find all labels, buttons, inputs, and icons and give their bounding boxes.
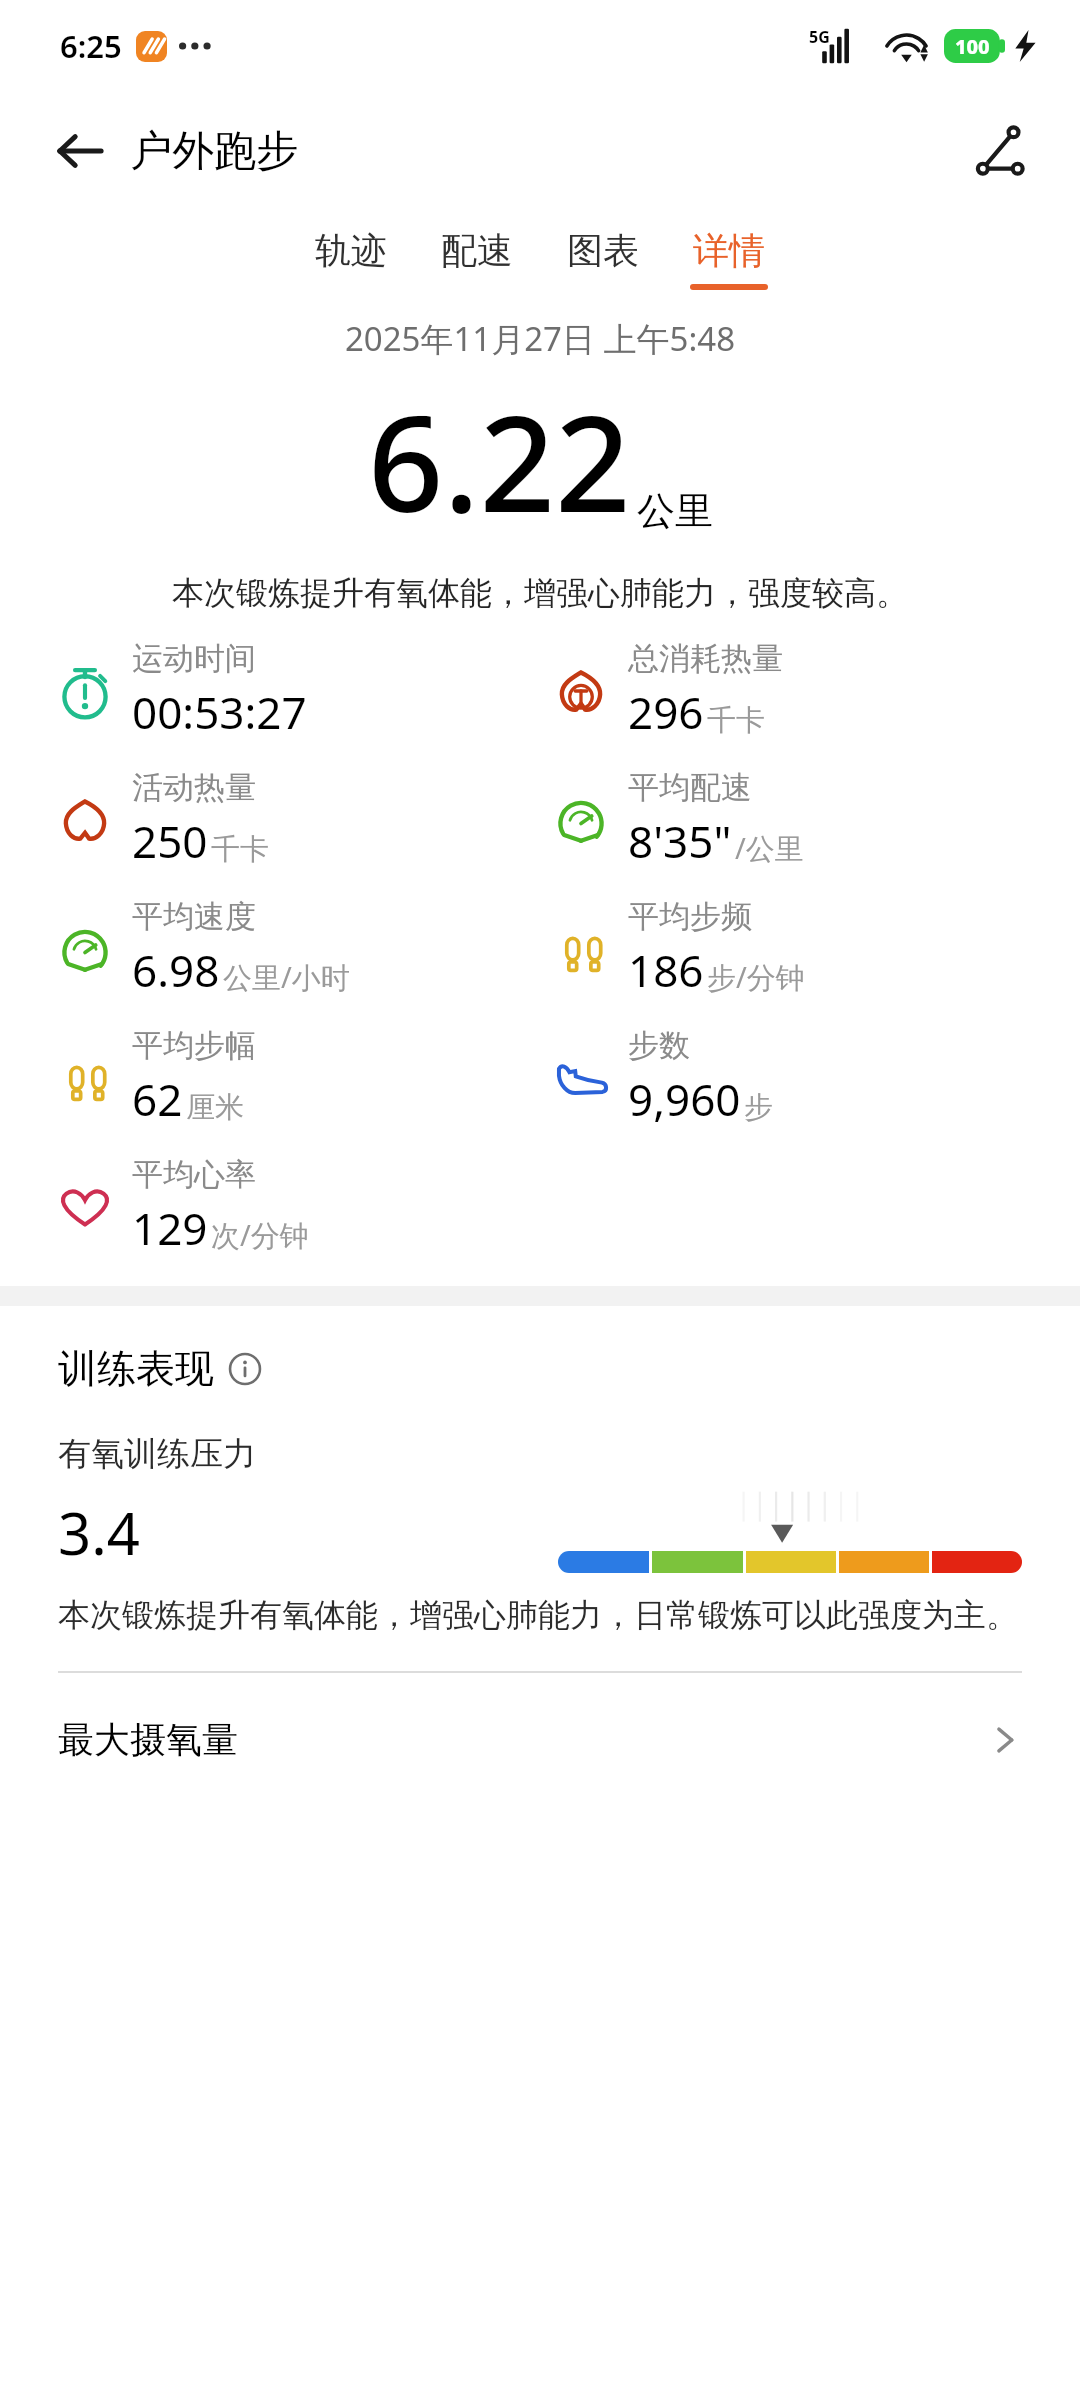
- button[interactable]: 总消耗热量: [548, 639, 1080, 742]
- button[interactable]: 配速: [438, 228, 516, 290]
- staticText: 本次锻炼提升有氧体能，增强心肺能力，日常锻炼可以此强度为主。: [58, 1595, 1018, 1635]
- staticText: /公里: [735, 828, 804, 868]
- staticText: 详情: [693, 228, 765, 273]
- button[interactable]: 平均步幅: [52, 1026, 540, 1129]
- staticText: 6.98: [132, 940, 220, 1000]
- staticText: 有氧训练压力: [58, 1433, 256, 1475]
- button[interactable]: 训练表现: [58, 1344, 262, 1393]
- staticText: 平均步频: [628, 897, 752, 936]
- other: More: [988, 1723, 1022, 1757]
- staticText: 次/分钟: [211, 1215, 309, 1255]
- staticText: 186: [628, 940, 704, 1000]
- staticText: 5G: [809, 26, 830, 48]
- button[interactable]: 轨迹: [312, 228, 390, 290]
- staticText: 平均步幅: [132, 1026, 256, 1065]
- staticText: 8'35": [628, 811, 732, 871]
- button[interactable]: 最大摄氧量: [58, 1717, 1022, 1762]
- staticText: 6:25: [60, 25, 122, 67]
- staticText: 公里/小时: [223, 957, 350, 997]
- staticText: 129: [132, 1198, 208, 1258]
- staticText: 平均心率: [132, 1155, 256, 1194]
- staticText: 最大摄氧量: [58, 1717, 238, 1762]
- staticText: 2025年11月27日 上午5:48: [0, 316, 1080, 361]
- button[interactable]: 平均心率: [52, 1155, 540, 1258]
- staticText: 活动热量: [132, 768, 256, 807]
- button[interactable]: 活动热量: [52, 768, 540, 871]
- staticText: 平均配速: [628, 768, 752, 807]
- staticText: 250: [132, 811, 208, 871]
- staticText: 轨迹: [315, 228, 387, 273]
- staticText: 00:53:27: [132, 682, 307, 742]
- staticText: 9,960: [628, 1069, 741, 1129]
- staticText: 运动时间: [132, 639, 256, 678]
- staticText: 步/分钟: [707, 957, 805, 997]
- staticText: 图表: [567, 228, 639, 273]
- staticText: 千卡: [707, 702, 765, 739]
- staticText: 公里: [637, 487, 713, 535]
- staticText: 62: [132, 1069, 183, 1129]
- button[interactable]: Share: [960, 111, 1040, 191]
- button[interactable]: 平均配速: [548, 768, 1080, 871]
- button[interactable]: 运动时间: [52, 639, 540, 742]
- button[interactable]: 平均步频: [548, 897, 1080, 1000]
- button[interactable]: 图表: [564, 228, 642, 290]
- staticText: 296: [628, 682, 704, 742]
- staticText: 步: [744, 1089, 773, 1126]
- button[interactable]: 详情: [690, 228, 768, 290]
- staticText: 3.4: [58, 1493, 140, 1572]
- staticText: 总消耗热量: [628, 639, 783, 678]
- staticText: 厘米: [186, 1089, 244, 1126]
- staticText: 100: [955, 33, 990, 60]
- staticText: 配速: [441, 228, 513, 273]
- button[interactable]: 步数: [548, 1026, 1080, 1129]
- staticText: 训练表现: [58, 1344, 214, 1393]
- staticText: 步数: [628, 1026, 690, 1065]
- staticText: 6.22: [368, 371, 631, 551]
- button[interactable]: Back: [42, 113, 118, 189]
- staticText: 千卡: [211, 831, 269, 868]
- staticText: 本次锻炼提升有氧体能，增强心肺能力，强度较高。: [30, 573, 1050, 613]
- button[interactable]: 平均速度: [52, 897, 540, 1000]
- staticText: 户外跑步: [130, 125, 298, 178]
- staticText: 平均速度: [132, 897, 256, 936]
